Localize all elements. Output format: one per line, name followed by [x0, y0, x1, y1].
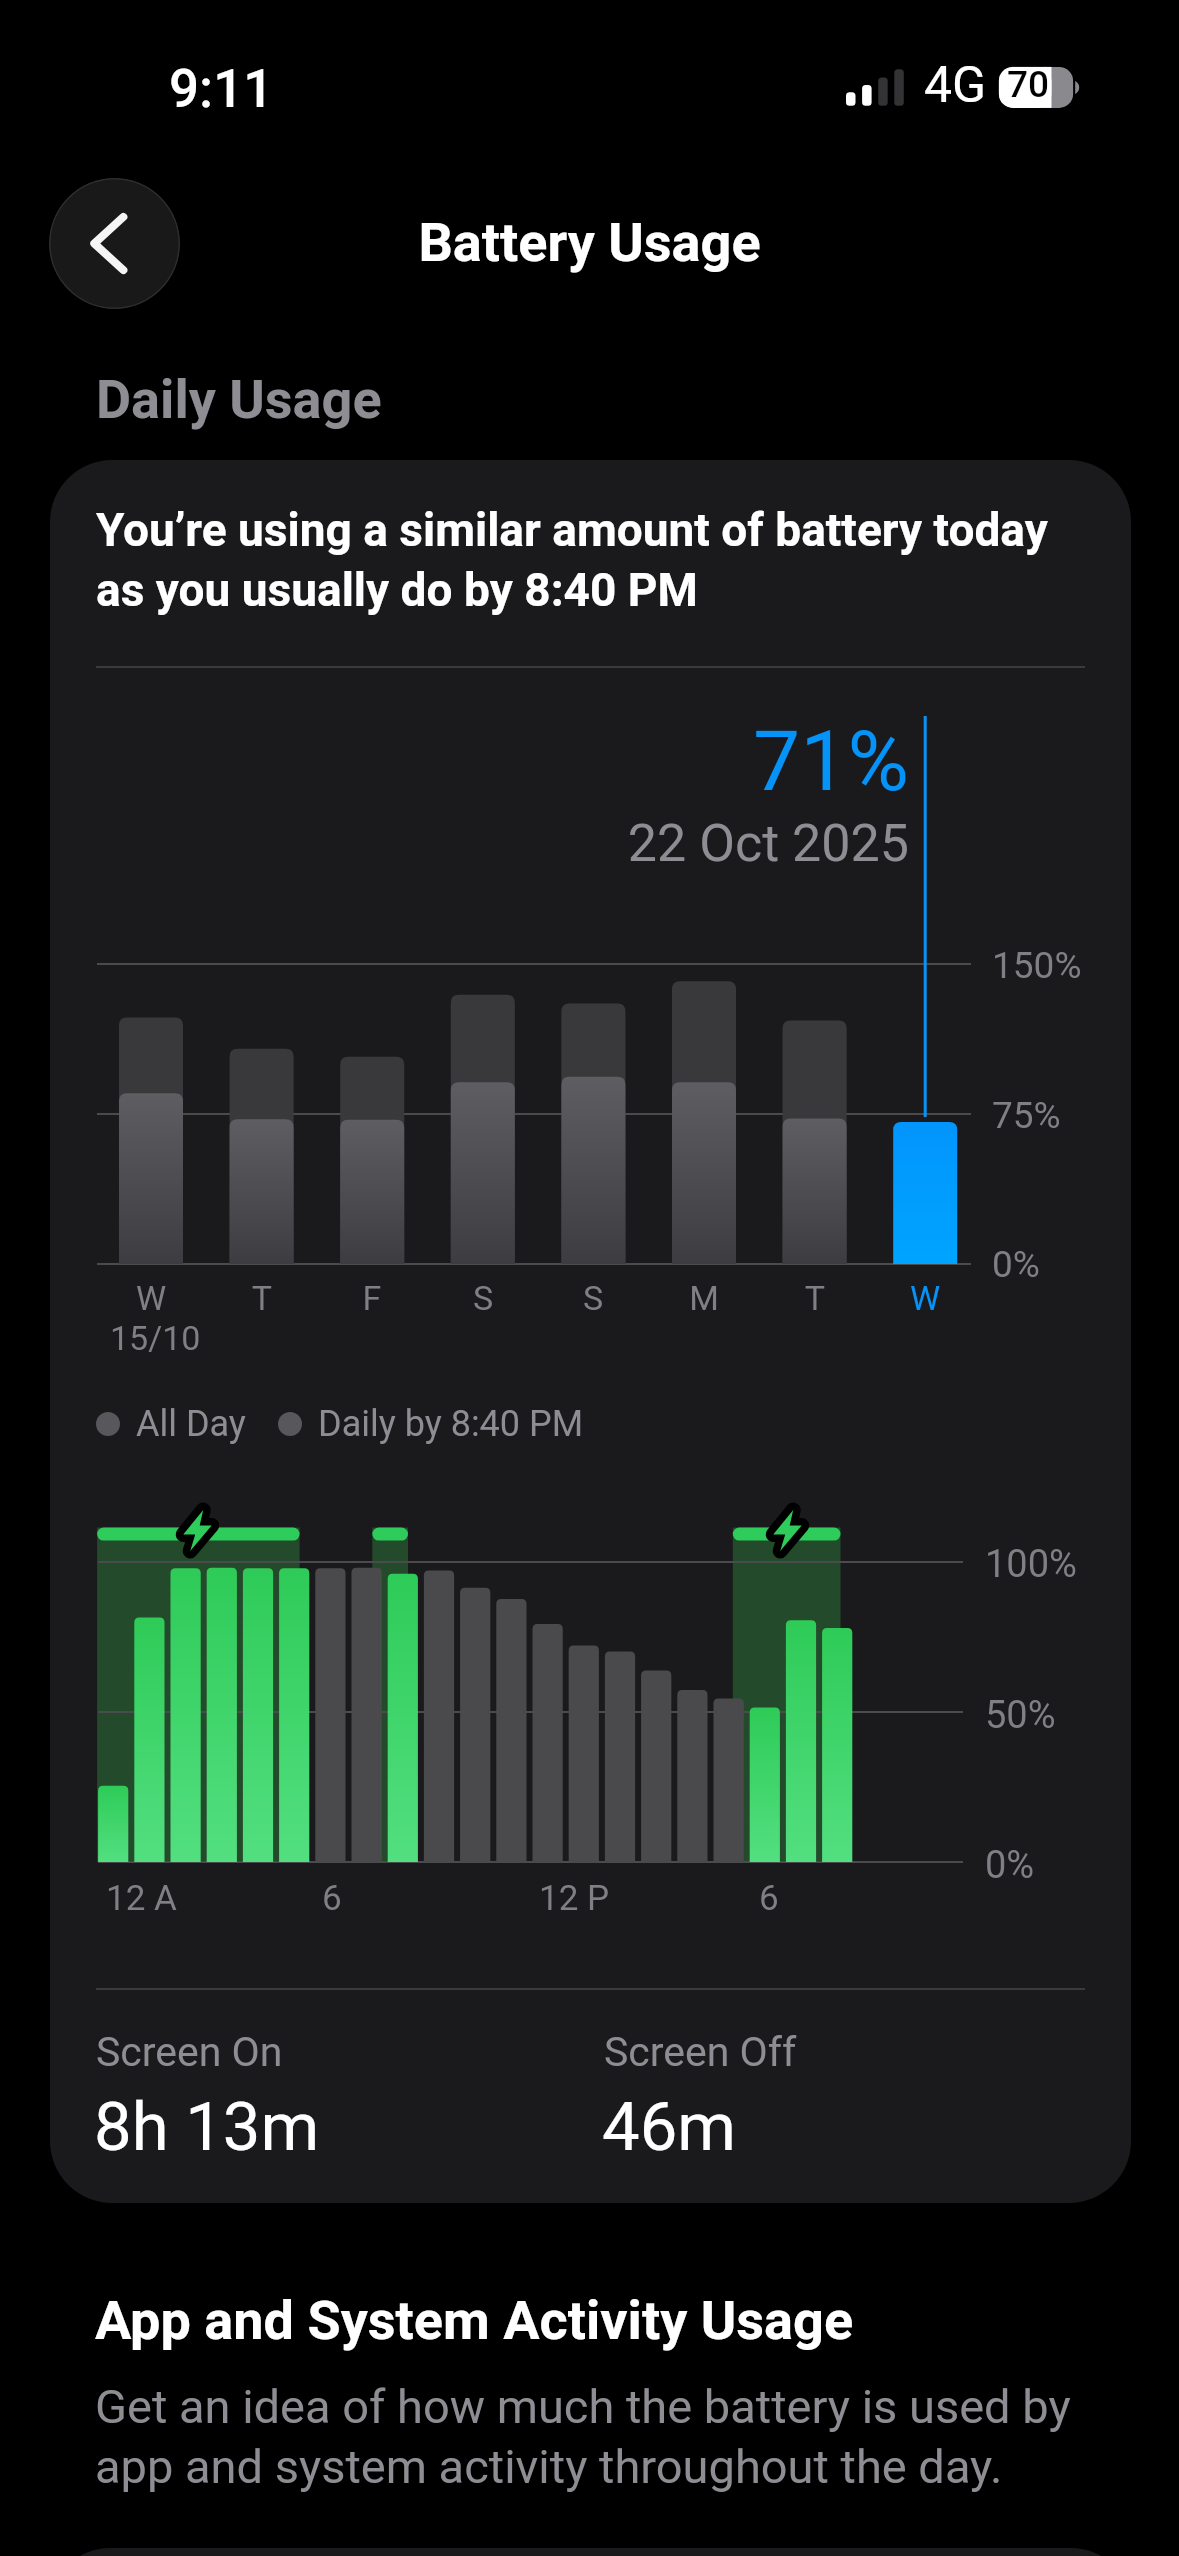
staticText: T	[222, 1278, 302, 1318]
staticText: 0%	[992, 1243, 1040, 1286]
staticText: 46m	[602, 2088, 737, 2167]
staticText: F	[332, 1278, 412, 1318]
staticText: Daily by 8:40 PM	[318, 1403, 584, 1445]
staticText: 15/10	[110, 1318, 201, 1358]
staticText: 75%	[992, 1094, 1061, 1137]
staticText: Screen On	[96, 2028, 283, 2076]
staticText: 71%	[600, 712, 909, 810]
staticText: Battery Usage	[0, 211, 1179, 274]
staticText: 12 P	[539, 1878, 610, 1919]
staticText: 6	[322, 1878, 342, 1919]
staticText: App and System Activity Usage	[95, 2289, 854, 2352]
staticText: 150%	[992, 944, 1082, 987]
staticText: M	[664, 1278, 744, 1318]
staticText: 100%	[985, 1542, 1077, 1587]
staticText: 8h 13m	[94, 2088, 320, 2167]
staticText: You’re using a similar amount of battery…	[96, 503, 1081, 618]
staticText: Get an idea of how much the battery is u…	[95, 2379, 1095, 2495]
staticText: T	[775, 1278, 855, 1318]
staticText: 4G	[924, 56, 987, 115]
staticText: All Day	[136, 1403, 246, 1445]
staticText: S	[553, 1278, 633, 1318]
staticText: 6	[759, 1878, 779, 1919]
staticText: W	[885, 1278, 965, 1318]
staticText: S	[443, 1278, 523, 1318]
staticText: 12 A	[106, 1878, 177, 1919]
staticText: 9:11	[169, 58, 274, 120]
staticText: Screen Off	[604, 2028, 797, 2076]
staticText: 50%	[985, 1693, 1056, 1738]
staticText: 22 Oct 2025	[500, 813, 909, 874]
button[interactable]: Back	[49, 178, 180, 309]
staticText: 0%	[985, 1843, 1035, 1888]
staticText: 70	[1000, 63, 1056, 106]
staticText: Daily Usage	[96, 368, 382, 431]
staticText: W	[111, 1278, 191, 1318]
